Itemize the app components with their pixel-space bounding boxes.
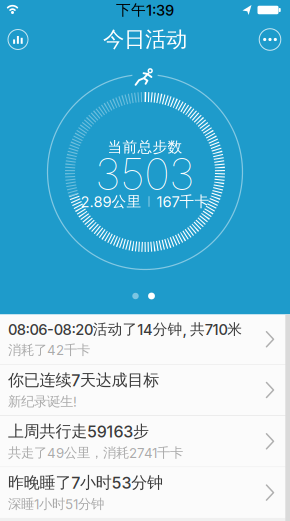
- button[interactable]: 上周共行走59163步: [0, 416, 290, 467]
- staticText: 2.89公里: [80, 192, 141, 210]
- staticText: 上周共行走59163步: [8, 421, 149, 441]
- staticText: 昨晚睡了7小时53分钟: [8, 473, 163, 492]
- staticText: 消耗了42千卡: [8, 342, 90, 358]
- button[interactable]: 08:06-08:20活动了14分钟, 共710米: [0, 314, 290, 364]
- staticText: 当前总步数: [107, 138, 182, 156]
- staticText: 共走了49公里，消耗2741千卡: [8, 445, 183, 461]
- staticText: 08:06-08:20活动了14分钟, 共710米: [8, 320, 242, 338]
- staticText: 167千卡: [156, 192, 209, 210]
- staticText: 新纪录诞生!: [8, 393, 77, 410]
- button[interactable]: [7, 29, 28, 50]
- staticText: 下午1:39: [116, 1, 174, 19]
- staticText: 深睡1小时51分钟: [8, 496, 104, 512]
- button[interactable]: 你已连续7天达成目标: [0, 365, 290, 415]
- staticText: 3503: [95, 148, 195, 200]
- staticText: 你已连续7天达成目标: [8, 370, 159, 390]
- staticText: 今日活动: [103, 26, 187, 53]
- button[interactable]: [258, 28, 281, 51]
- button[interactable]: 昨晚睡了7小时53分钟: [0, 467, 290, 518]
